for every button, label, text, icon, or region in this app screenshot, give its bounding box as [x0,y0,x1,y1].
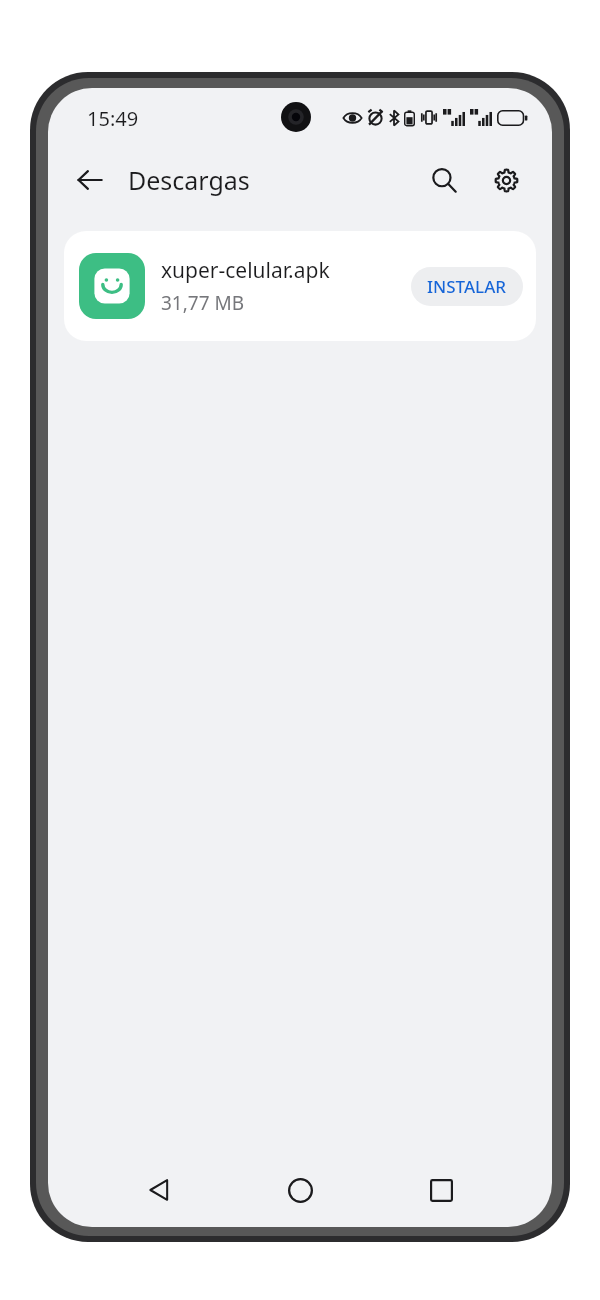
button[interactable]: Search [418,154,470,206]
button[interactable]: Back [66,156,114,204]
staticText: 15:49 [87,105,139,132]
button[interactable]: Back [129,1160,189,1220]
staticText: 31,77 MB [161,290,245,316]
button[interactable]: INSTALAR [411,267,523,306]
staticText: Descargas [128,163,250,197]
staticText: xuper-celular.apk [161,256,330,285]
staticText: INSTALAR [427,275,507,298]
button[interactable]: Recents [411,1160,471,1220]
button[interactable]: Settings [480,154,532,206]
button[interactable]: xuper-celular.apk [64,231,536,341]
button[interactable]: Home [270,1160,330,1220]
